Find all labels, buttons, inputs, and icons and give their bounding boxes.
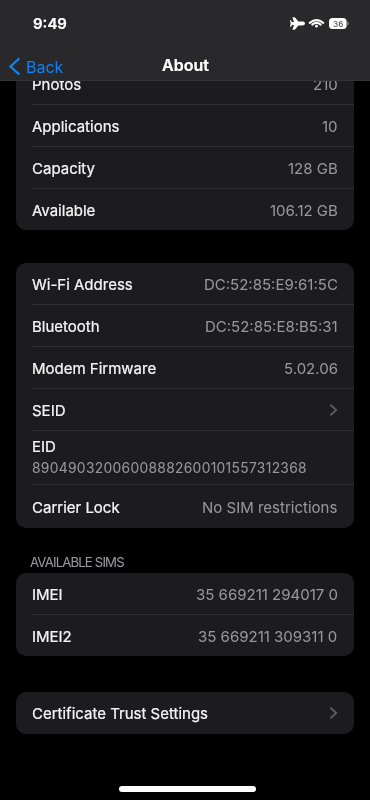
staticText: 36 (333, 19, 344, 29)
staticText: 35 669211 309311 0 (198, 627, 338, 645)
staticText: Wi-Fi Address (32, 275, 133, 293)
staticText: 106.12 GB (270, 201, 338, 219)
staticText: Available (32, 201, 96, 219)
staticText: DC:52:85:E8:B5:31 (205, 317, 338, 335)
staticText: 10 (322, 117, 338, 135)
button[interactable]: Back (0, 53, 72, 80)
staticText: Capacity (32, 159, 95, 177)
staticText: 9:49 (33, 14, 67, 32)
staticText: Modem Firmware (32, 359, 157, 377)
button[interactable]: Applications (16, 105, 354, 147)
button[interactable]: Photos (16, 81, 354, 105)
other: Wi-Fi (310, 17, 323, 27)
button[interactable]: Available (16, 189, 354, 230)
staticText: AVAILABLE SIMS (30, 554, 124, 570)
staticText: Bluetooth (32, 317, 100, 335)
staticText: 5.02.06 (284, 359, 338, 377)
staticText: 210 (313, 81, 338, 93)
staticText: Carrier Lock (32, 498, 120, 516)
button[interactable]: Modem Firmware (16, 347, 354, 389)
staticText: 35 669211 294017 0 (196, 585, 338, 603)
staticText: Photos (32, 81, 82, 93)
staticText: Applications (32, 117, 120, 135)
staticText: 128 GB (288, 159, 338, 177)
other: Battery 36 percent (329, 18, 349, 29)
other: Airplane mode (290, 17, 305, 30)
staticText: Back (26, 57, 64, 76)
staticText: No SIM restrictions (202, 498, 338, 516)
staticText: IMEI2 (32, 627, 72, 645)
button[interactable]: SEID (16, 389, 354, 431)
button[interactable]: Carrier Lock (16, 485, 354, 528)
staticText: EID (32, 437, 56, 455)
button[interactable]: Certificate Trust Settings (16, 692, 354, 734)
staticText: About (162, 55, 209, 74)
staticText: 89049032006008882600101557312368 (32, 460, 307, 477)
button[interactable]: Capacity (16, 147, 354, 189)
button[interactable]: Bluetooth (16, 305, 354, 347)
staticText: Certificate Trust Settings (32, 704, 208, 722)
button[interactable]: IMEI (16, 573, 354, 615)
button[interactable]: Wi-Fi Address (16, 263, 354, 305)
staticText: DC:52:85:E9:61:5C (204, 275, 338, 293)
button[interactable]: EID (16, 431, 354, 485)
staticText: SEID (32, 401, 66, 419)
button[interactable]: IMEI2 (16, 615, 354, 656)
staticText: IMEI (32, 585, 63, 603)
